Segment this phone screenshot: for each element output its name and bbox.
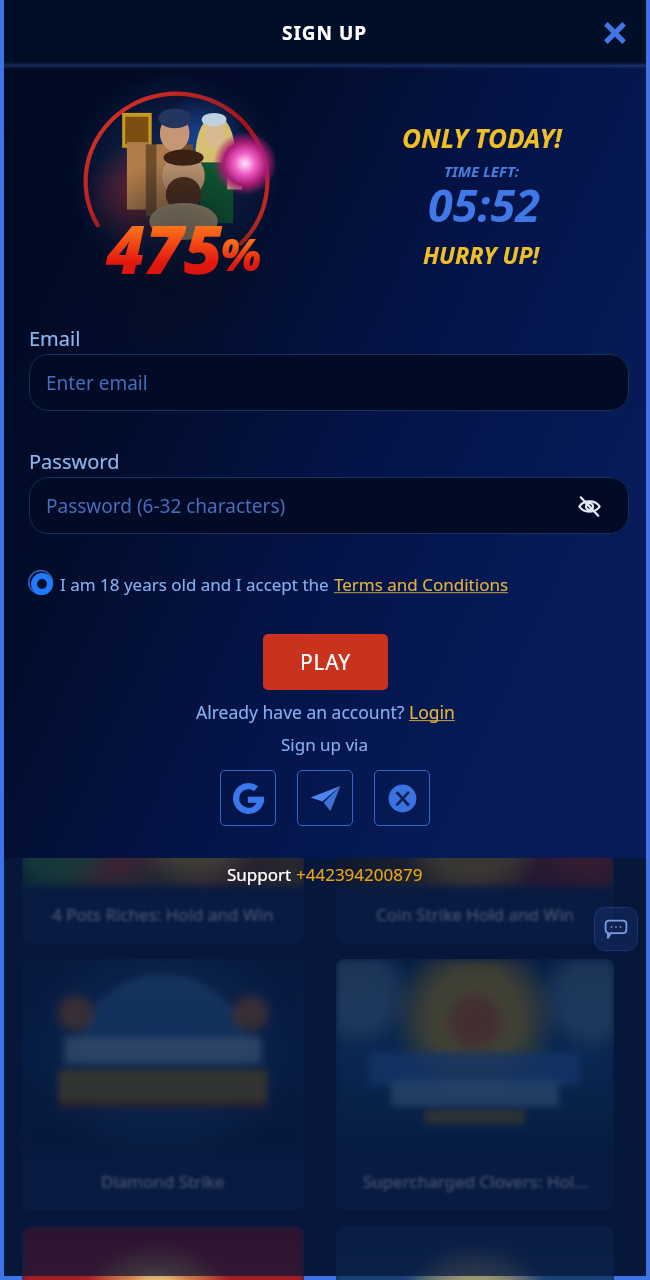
- staticText: Supercharged Clovers: Hol...: [363, 1170, 588, 1193]
- button[interactable]: Accept terms and conditions: [26, 568, 58, 600]
- button[interactable]: Diamond Strike: [22, 959, 304, 1210]
- staticText: Coin Strike Hold and Win: [376, 903, 575, 926]
- staticText: 05:52: [428, 174, 541, 235]
- staticText: Support: [227, 863, 296, 886]
- button[interactable]: Password (6-32 characters): [29, 477, 629, 534]
- staticText: 4 Pots Riches: Hold and Win: [52, 903, 274, 926]
- staticText: Enter email: [46, 370, 148, 396]
- button[interactable]: Close: [592, 10, 638, 56]
- staticText: PLAY: [300, 648, 351, 677]
- button[interactable]: Sign up with Telegram: [297, 770, 353, 826]
- button[interactable]: Terms and Conditions: [334, 573, 509, 596]
- staticText: 475: [106, 202, 223, 293]
- button[interactable]: 4 Pots Riches: Hold and Win: [22, 796, 304, 943]
- button[interactable]: Sign up with Google: [220, 770, 276, 826]
- staticText: Email: [29, 325, 81, 352]
- staticText: I am 18 years old and I accept the: [60, 573, 334, 596]
- staticText: Sign up via: [281, 733, 369, 756]
- staticText: ONLY TODAY!: [402, 120, 562, 155]
- button[interactable]: Coin Strike Hold and Win: [336, 796, 614, 943]
- staticText: %: [220, 224, 261, 284]
- button[interactable]: +442394200879: [296, 863, 423, 886]
- button[interactable]: Supercharged Clovers: Hol...: [336, 959, 614, 1210]
- staticText: TIME LEFT:: [444, 161, 520, 181]
- button[interactable]: Enter email: [29, 354, 629, 411]
- staticText: Password: [29, 448, 120, 475]
- staticText: Diamond Strike: [101, 1170, 225, 1193]
- button[interactable]: Sign up with X: [374, 770, 430, 826]
- staticText: Password (6-32 characters): [46, 493, 286, 519]
- staticText: Already have an account?: [196, 700, 409, 724]
- button[interactable]: PLAY: [263, 634, 388, 690]
- staticText: SIGN UP: [282, 20, 368, 46]
- button[interactable]: Login: [409, 700, 455, 724]
- staticText: HURRY UP!: [423, 239, 540, 270]
- button[interactable]: Show password: [573, 490, 605, 522]
- button[interactable]: [336, 1226, 614, 1280]
- button[interactable]: Support chat: [594, 907, 638, 951]
- button[interactable]: [22, 1226, 304, 1280]
